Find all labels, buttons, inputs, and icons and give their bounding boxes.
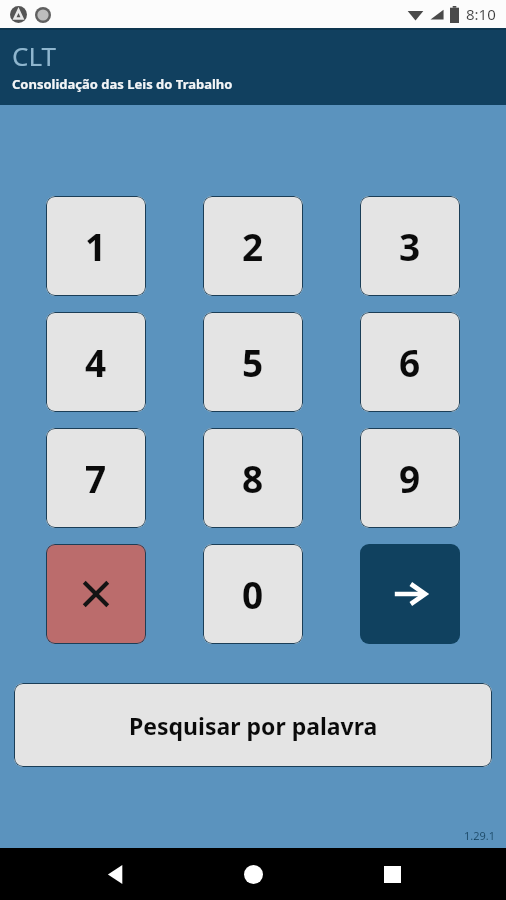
button[interactable]: Back bbox=[91, 850, 139, 898]
button[interactable]: 3 bbox=[360, 196, 460, 296]
staticText: Pesquisar por palavra bbox=[129, 710, 378, 741]
staticText: 5 bbox=[242, 337, 264, 387]
staticText: 6 bbox=[399, 337, 421, 387]
button[interactable]: Pesquisar bbox=[360, 544, 460, 644]
staticText: CLT bbox=[12, 38, 56, 73]
staticText: 1 bbox=[85, 221, 107, 271]
staticText: Consolidação das Leis do Trabalho bbox=[12, 75, 233, 93]
staticText: 8 bbox=[242, 453, 264, 503]
button[interactable]: 5 bbox=[203, 312, 303, 412]
button[interactable]: 2 bbox=[203, 196, 303, 296]
staticText: 8:10 bbox=[466, 4, 496, 24]
staticText: 0 bbox=[242, 569, 264, 619]
button[interactable]: 4 bbox=[46, 312, 146, 412]
button[interactable]: Home bbox=[229, 850, 277, 898]
staticText: 9 bbox=[399, 453, 421, 503]
staticText: 7 bbox=[85, 453, 107, 503]
staticText: 2 bbox=[242, 221, 264, 271]
button[interactable]: Limpar bbox=[46, 544, 146, 644]
button[interactable]: Recents bbox=[368, 850, 416, 898]
button[interactable]: 0 bbox=[203, 544, 303, 644]
staticText: 1.29.1 bbox=[464, 828, 496, 843]
button[interactable]: Pesquisar por palavra bbox=[14, 683, 492, 767]
staticText: 3 bbox=[399, 221, 421, 271]
button[interactable]: 7 bbox=[46, 428, 146, 528]
button[interactable]: 6 bbox=[360, 312, 460, 412]
button[interactable]: 1 bbox=[46, 196, 146, 296]
button[interactable]: 8 bbox=[203, 428, 303, 528]
button[interactable]: 9 bbox=[360, 428, 460, 528]
staticText: 4 bbox=[85, 337, 107, 387]
